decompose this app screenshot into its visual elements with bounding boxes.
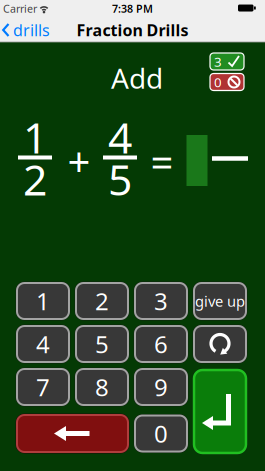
- staticText: drills: [13, 19, 50, 41]
- button[interactable]: 4: [15, 324, 70, 363]
- staticText: 1: [23, 109, 47, 165]
- staticText: 0: [154, 418, 168, 449]
- staticText: 9: [154, 371, 168, 403]
- button[interactable]: 0: [133, 414, 188, 453]
- staticText: 3: [214, 53, 222, 70]
- staticText: 7:38 PM: [112, 1, 153, 16]
- staticText: 5: [95, 328, 109, 360]
- button[interactable]: 2: [74, 281, 129, 320]
- button[interactable]: 9: [133, 367, 188, 406]
- button[interactable]: 8: [74, 367, 129, 406]
- staticText: =: [150, 135, 173, 188]
- staticText: 8: [95, 371, 109, 403]
- button[interactable]: 7: [15, 367, 70, 406]
- staticText: 2: [95, 285, 109, 317]
- button[interactable]: Restart: [192, 324, 247, 363]
- staticText: 3: [154, 285, 168, 317]
- staticText: 4: [36, 328, 50, 360]
- staticText: Carrier: [3, 1, 37, 16]
- button[interactable]: drills: [2, 19, 50, 41]
- staticText: give up: [195, 291, 245, 311]
- button[interactable]: give up: [192, 281, 247, 320]
- button[interactable]: 5: [74, 324, 129, 363]
- staticText: +: [67, 134, 90, 187]
- staticText: Fraction Drills: [76, 19, 188, 41]
- button[interactable]: Enter: [192, 368, 247, 454]
- button[interactable]: 1: [15, 281, 70, 320]
- staticText: 1: [36, 285, 50, 317]
- staticText: Add: [111, 59, 163, 97]
- staticText: 0: [214, 73, 222, 91]
- staticText: 2: [23, 151, 47, 207]
- button[interactable]: 3: [133, 281, 188, 320]
- staticText: 7: [36, 371, 50, 403]
- staticText: 6: [154, 328, 168, 360]
- staticText: 5: [108, 151, 132, 207]
- button[interactable]: Delete: [15, 413, 129, 453]
- button[interactable]: 6: [133, 324, 188, 363]
- staticText: 4: [108, 109, 132, 165]
